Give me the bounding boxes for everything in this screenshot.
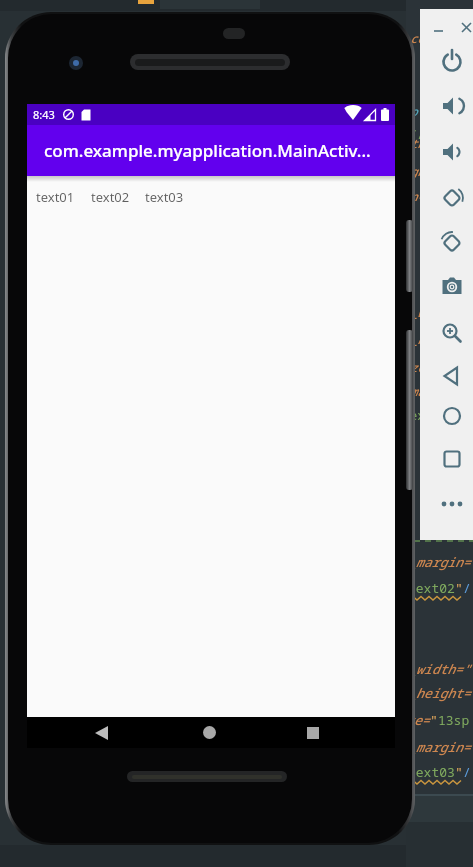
- staticText: /: [463, 763, 471, 781]
- staticText: o:: [410, 103, 425, 119]
- staticText: _w: [410, 304, 425, 320]
- button[interactable]: text03: [145, 188, 184, 206]
- staticText: ": [455, 579, 463, 597]
- button[interactable]: [86, 717, 116, 748]
- staticText: _height=: [408, 684, 471, 702]
- staticText: ma: [410, 383, 425, 399]
- button[interactable]: [438, 490, 466, 518]
- button[interactable]: [438, 183, 466, 211]
- staticText: com.example.myapplication.MainActiv...: [44, 139, 371, 162]
- button[interactable]: [438, 228, 466, 256]
- staticText: text02: [408, 579, 455, 597]
- staticText: /: [463, 579, 471, 597]
- button[interactable]: [458, 19, 473, 35]
- button[interactable]: [194, 717, 224, 748]
- button[interactable]: [438, 138, 466, 166]
- staticText: _margin=: [408, 738, 471, 756]
- staticText: text03: [408, 763, 455, 781]
- staticText: ze=: [406, 711, 430, 729]
- staticText: ze: [410, 359, 425, 375]
- button[interactable]: [298, 717, 328, 748]
- button[interactable]: [438, 92, 466, 120]
- staticText: n=: [410, 188, 425, 204]
- button[interactable]: [438, 319, 466, 347]
- staticText: ex: [410, 407, 425, 423]
- staticText: _width=": [408, 660, 471, 678]
- staticText: _margin=: [408, 553, 471, 571]
- staticText: th: [410, 135, 425, 151]
- button[interactable]: [438, 402, 466, 430]
- staticText: _h: [410, 331, 425, 347]
- staticText: 13sp: [438, 711, 470, 729]
- button[interactable]: text01: [36, 188, 75, 206]
- staticText: //: [410, 126, 425, 142]
- button[interactable]: [438, 362, 466, 390]
- button[interactable]: [430, 19, 446, 35]
- staticText: ": [430, 711, 438, 729]
- staticText: 8:43: [33, 107, 55, 122]
- button[interactable]: [438, 47, 466, 75]
- staticText: co: [410, 30, 425, 46]
- button[interactable]: text02: [91, 188, 130, 206]
- staticText: ": [455, 763, 463, 781]
- staticText: gh: [410, 163, 425, 179]
- button[interactable]: [438, 445, 466, 473]
- button[interactable]: [438, 272, 466, 300]
